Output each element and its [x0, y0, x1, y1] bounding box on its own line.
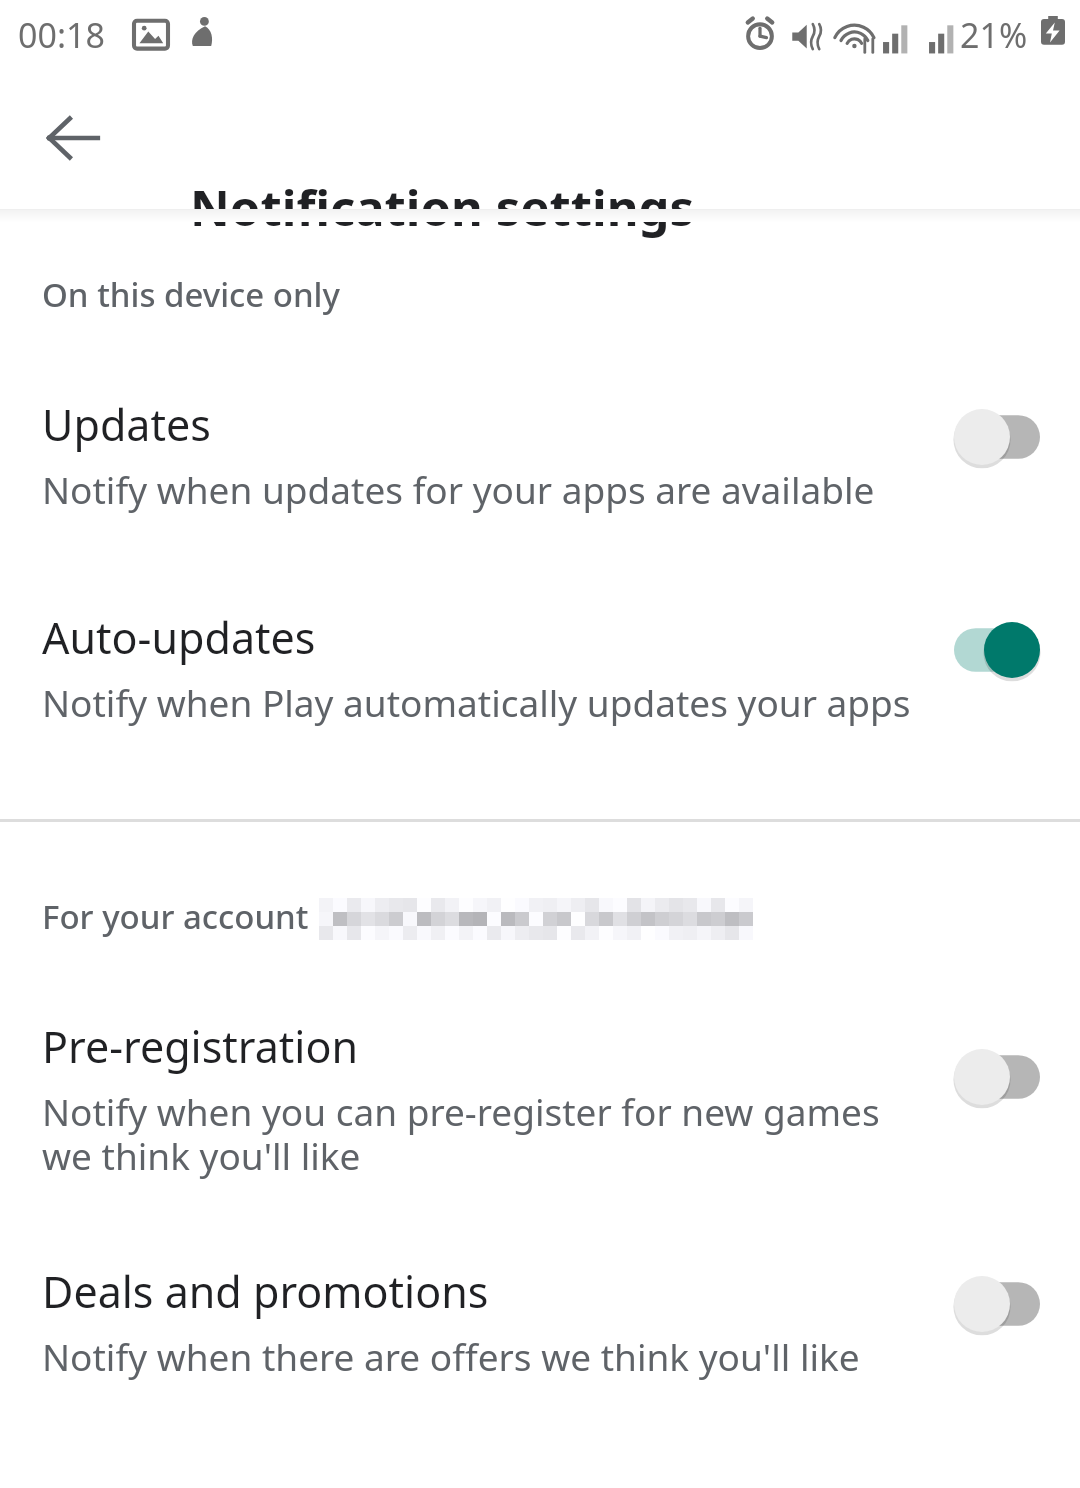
- staticText: Notify when updates for your apps are av…: [42, 464, 875, 514]
- staticText: Notify when Play automatically updates y…: [42, 677, 911, 727]
- staticText: On this device only: [42, 272, 340, 317]
- button[interactable]: Back: [18, 83, 128, 193]
- staticText: Deals and promotions: [42, 1262, 489, 1321]
- staticText: For your account: [42, 894, 309, 939]
- staticText: Auto-updates: [42, 608, 316, 667]
- button[interactable]: Auto-updates: [0, 608, 1080, 727]
- button[interactable]: Off: [954, 409, 1040, 465]
- staticText: 21%: [960, 12, 1028, 58]
- staticText: Notification settings: [190, 174, 695, 241]
- staticText: Notify when you can pre-register for new…: [42, 1086, 880, 1180]
- button[interactable]: Off: [954, 1049, 1040, 1105]
- staticText: 00:18: [18, 12, 105, 58]
- staticText: Updates: [42, 395, 211, 454]
- button[interactable]: On: [954, 622, 1040, 678]
- staticText: Pre-registration: [42, 1017, 359, 1076]
- button[interactable]: Deals and promotions: [0, 1262, 1080, 1381]
- button[interactable]: Updates: [0, 395, 1080, 514]
- button[interactable]: Off: [954, 1276, 1040, 1332]
- button[interactable]: Pre-registration: [0, 1017, 1080, 1180]
- staticText: Notify when there are offers we think yo…: [42, 1331, 860, 1381]
